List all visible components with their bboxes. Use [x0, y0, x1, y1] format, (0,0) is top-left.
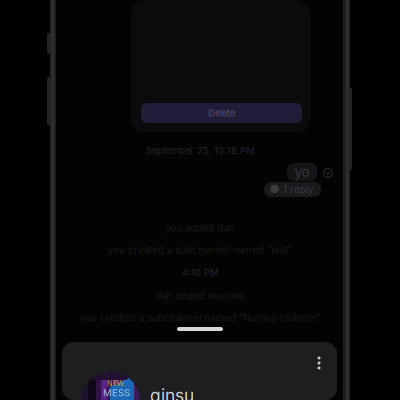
staticText: ginsu	[150, 385, 194, 400]
staticText: NEW	[107, 379, 124, 388]
staticText: MESS	[103, 387, 130, 399]
staticText: 4:16 PM	[182, 267, 218, 278]
staticText: 1 reply	[283, 183, 314, 195]
staticText: dan added omoney	[155, 290, 244, 302]
button[interactable]: More options	[313, 356, 325, 370]
button[interactable]: Delete	[141, 103, 302, 123]
staticText: you created a subchannel named “Normal c…	[80, 312, 320, 324]
staticText: September 25, 10:18 PM	[146, 145, 254, 156]
staticText: you added dan	[165, 222, 234, 234]
staticText: Delete	[208, 107, 235, 119]
staticText: yo	[294, 164, 309, 180]
staticText: you created a subchannel named “test”	[108, 244, 292, 256]
